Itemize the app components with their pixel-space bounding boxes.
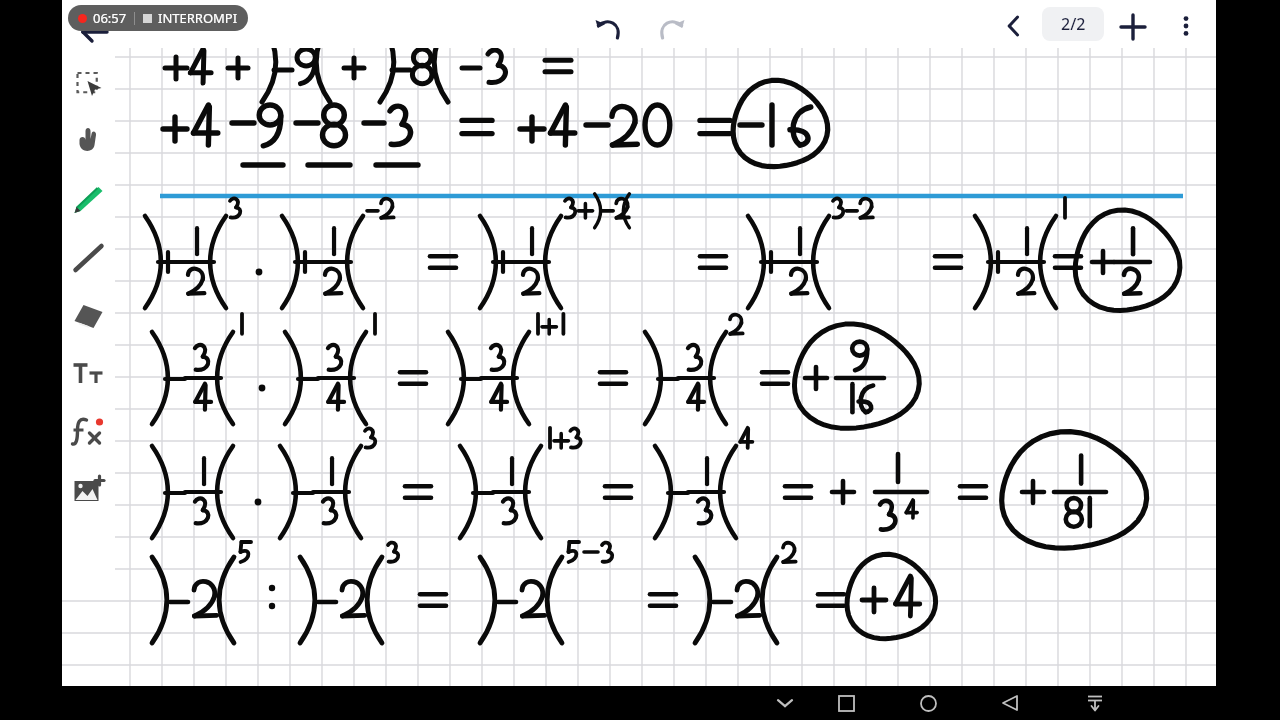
button[interactable]: 2/2 [1042,7,1104,41]
button[interactable]: Text [62,345,115,403]
button[interactable]: Insert image [62,461,115,519]
button[interactable]: Pan [62,113,115,171]
button[interactable]: Select [62,55,115,113]
button[interactable]: 06:57 [78,5,238,31]
staticText: INTERROMPI [158,9,238,27]
button[interactable]: Line [62,229,115,287]
button[interactable]: Undo [586,6,632,52]
button[interactable]: Formula [62,403,115,461]
button[interactable]: Pen [62,171,115,229]
button[interactable]: Recent apps [826,686,866,720]
button[interactable]: Hide [765,686,805,720]
button[interactable]: Previous page [994,6,1034,46]
button[interactable]: Back [990,686,1030,720]
button[interactable]: Redo [648,6,694,52]
button[interactable]: Back [70,8,118,56]
button[interactable]: Home [908,686,948,720]
staticText: 2/2 [1061,13,1086,35]
button[interactable]: Add page [1112,6,1154,48]
button[interactable]: Collapse [1075,686,1115,720]
button[interactable]: Eraser [62,287,115,345]
staticText: 06:57 [93,9,127,27]
button[interactable]: More options [1166,6,1206,46]
